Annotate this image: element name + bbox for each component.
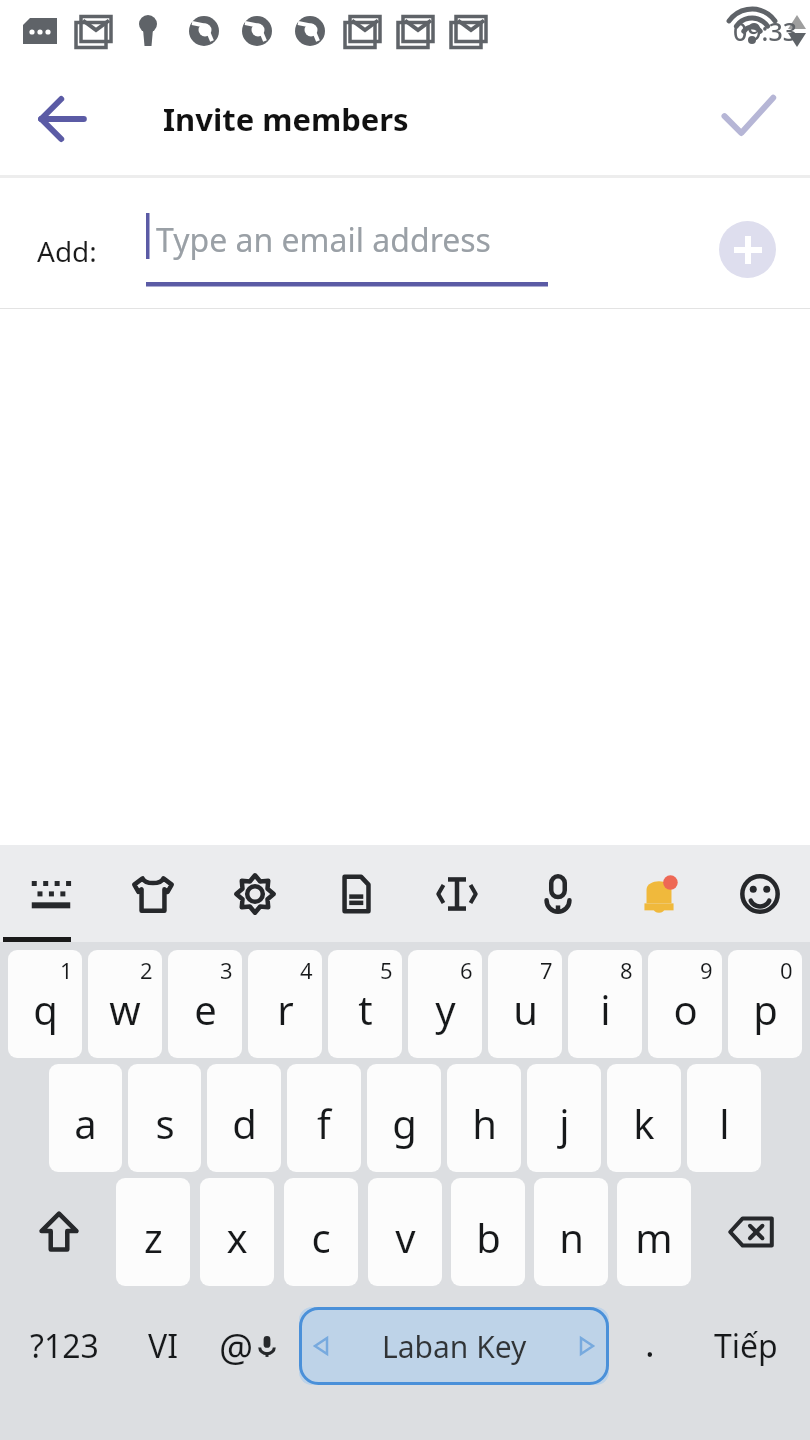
button[interactable]: c	[284, 1178, 358, 1286]
button[interactable]: d	[207, 1064, 281, 1172]
button[interactable]: Symbols and voice	[203, 1292, 295, 1400]
button[interactable]: w	[88, 950, 162, 1058]
staticText: .	[645, 1319, 655, 1368]
button[interactable]: r	[248, 950, 322, 1058]
button[interactable]: x	[200, 1178, 274, 1286]
button[interactable]: Back	[12, 69, 112, 169]
button[interactable]: Emoji	[709, 845, 810, 942]
button[interactable]: Theme	[102, 845, 204, 942]
button[interactable]: j	[527, 1064, 601, 1172]
staticText: f	[317, 1096, 331, 1150]
staticText: k	[633, 1096, 655, 1150]
button[interactable]: l	[687, 1064, 761, 1172]
button[interactable]: f	[287, 1064, 361, 1172]
button[interactable]: s	[128, 1064, 201, 1172]
staticText: w	[109, 982, 141, 1036]
button[interactable]: t	[328, 950, 402, 1058]
staticText: c	[311, 1210, 331, 1264]
staticText: 7	[540, 955, 553, 985]
staticText: ?123	[30, 1324, 99, 1368]
button[interactable]: Laban Key	[299, 1307, 609, 1385]
button[interactable]: z	[116, 1178, 190, 1286]
button[interactable]: Clipboard	[305, 845, 406, 942]
button[interactable]: Voice input	[507, 845, 608, 942]
staticText: 4	[300, 955, 313, 985]
button[interactable]: .	[613, 1292, 687, 1400]
staticText: d	[232, 1096, 257, 1150]
staticText: h	[472, 1096, 497, 1150]
staticText: j	[559, 1096, 570, 1150]
button[interactable]: i	[568, 950, 642, 1058]
button[interactable]: Move cursor	[406, 845, 507, 942]
staticText: t	[358, 982, 373, 1036]
button[interactable]: Type an email address	[146, 193, 680, 293]
staticText: Type an email address	[156, 218, 491, 262]
staticText: s	[155, 1096, 175, 1150]
button[interactable]: Add member	[719, 221, 776, 278]
staticText: i	[600, 982, 611, 1036]
staticText: 9	[700, 955, 713, 985]
button[interactable]: a	[49, 1064, 122, 1172]
staticText: Tiếp	[714, 1324, 778, 1368]
button[interactable]: Backspace	[697, 1178, 805, 1286]
staticText: a	[74, 1096, 97, 1150]
staticText: r	[277, 982, 294, 1036]
button[interactable]: b	[451, 1178, 525, 1286]
staticText: y	[435, 982, 456, 1036]
staticText: 0	[780, 955, 793, 985]
button[interactable]: e	[168, 950, 242, 1058]
staticText: g	[392, 1096, 417, 1150]
button[interactable]: Tiếp	[687, 1292, 805, 1400]
button[interactable]: VI	[123, 1292, 203, 1400]
button[interactable]: q	[8, 950, 82, 1058]
staticText: Add:	[37, 232, 97, 270]
staticText: 6	[460, 955, 473, 985]
button[interactable]: n	[534, 1178, 608, 1286]
staticText: m	[635, 1210, 673, 1264]
staticText: v	[395, 1210, 416, 1264]
button[interactable]: ?123	[5, 1292, 123, 1400]
staticText: e	[194, 982, 217, 1036]
button[interactable]: k	[607, 1064, 681, 1172]
staticText: @	[219, 1320, 254, 1372]
button[interactable]: o	[648, 950, 722, 1058]
staticText: VI	[148, 1324, 179, 1368]
staticText: 5	[380, 955, 393, 985]
staticText: b	[476, 1210, 501, 1264]
staticText: u	[513, 982, 538, 1036]
staticText: z	[144, 1210, 163, 1264]
staticText: 8	[620, 955, 633, 985]
button[interactable]: Done	[700, 71, 796, 167]
button[interactable]: p	[728, 950, 802, 1058]
staticText: Laban Key	[382, 1326, 527, 1367]
staticText: p	[753, 982, 778, 1036]
staticText: o	[673, 982, 698, 1036]
staticText: 3	[220, 955, 233, 985]
staticText: n	[559, 1210, 584, 1264]
button[interactable]: v	[368, 1178, 442, 1286]
button[interactable]: Keyboard layout	[0, 845, 102, 942]
button[interactable]: Notifications	[608, 845, 709, 942]
staticText: 1	[60, 955, 73, 985]
button[interactable]: Settings	[204, 845, 305, 942]
button[interactable]: u	[488, 950, 562, 1058]
button[interactable]: g	[367, 1064, 441, 1172]
staticText: 09:33	[733, 14, 798, 48]
button[interactable]: h	[447, 1064, 521, 1172]
button[interactable]: y	[408, 950, 482, 1058]
staticText: x	[226, 1210, 248, 1264]
button[interactable]: m	[617, 1178, 691, 1286]
staticText: l	[719, 1096, 730, 1150]
button[interactable]: Shift	[5, 1178, 113, 1286]
staticText: Invite members	[163, 98, 409, 140]
staticText: q	[33, 982, 58, 1036]
staticText: 2	[140, 955, 153, 985]
